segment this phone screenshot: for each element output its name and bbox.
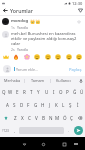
button[interactable]: Merhaba <box>0 76 24 85</box>
button[interactable]: I <box>50 85 57 98</box>
staticText: Ö <box>63 115 67 121</box>
staticText: Ü <box>80 89 84 95</box>
button[interactable]: İ <box>74 98 81 111</box>
staticText: D <box>20 102 24 108</box>
button[interactable]: P <box>64 85 71 98</box>
staticText: 1s <box>11 25 15 29</box>
button[interactable]: Flower <box>23 53 31 61</box>
button[interactable]: F <box>25 98 32 111</box>
staticText: A <box>6 102 9 108</box>
button[interactable]: Emoji <box>65 53 73 61</box>
button[interactable]: M <box>54 111 61 124</box>
staticText: Yanıtla <box>17 47 28 52</box>
staticText: R <box>23 89 26 95</box>
staticText: Yorumlar <box>10 7 33 14</box>
button[interactable]: A <box>4 98 11 111</box>
staticText: W <box>8 89 13 95</box>
staticText: 12:30 <box>72 1 83 6</box>
button[interactable]: Ü <box>78 85 85 98</box>
staticText: H <box>41 102 45 108</box>
button[interactable]: Emoji <box>54 53 62 61</box>
button[interactable]: Like <box>75 18 83 26</box>
button[interactable]: Ç <box>68 111 75 124</box>
button[interactable]: W <box>7 85 14 98</box>
button[interactable]: Voice input <box>76 76 85 85</box>
button[interactable]: O <box>57 85 64 98</box>
button[interactable]: Emoji <box>33 53 41 61</box>
button[interactable]: D <box>18 98 25 111</box>
button[interactable]: Back <box>20 140 28 148</box>
button[interactable]: X <box>19 111 26 124</box>
button[interactable]: Send <box>74 126 83 135</box>
staticText: . <box>68 128 70 134</box>
button[interactable]: B <box>40 111 47 124</box>
button[interactable]: Kullanıcı <box>51 76 76 85</box>
button[interactable]: Backspace <box>75 111 85 124</box>
staticText: Yorum ekle... <box>16 67 38 72</box>
staticText: F <box>27 102 30 108</box>
button[interactable]: C <box>26 111 33 124</box>
button[interactable]: S <box>11 98 18 111</box>
button[interactable]: Home <box>39 140 47 148</box>
staticText: İ <box>77 102 79 108</box>
button[interactable]: Q <box>0 85 7 98</box>
staticText: , <box>14 128 16 134</box>
button[interactable]: V <box>33 111 40 124</box>
staticText: mondog <box>11 18 29 24</box>
button[interactable]: J <box>46 98 53 111</box>
button[interactable]: T <box>28 85 35 98</box>
staticText: L <box>62 102 65 108</box>
staticText: 👑👑 <box>30 19 41 24</box>
button[interactable]: Crown <box>2 53 10 61</box>
button[interactable]: Ğ <box>71 85 78 98</box>
button[interactable]: H <box>39 98 46 111</box>
button[interactable]: E <box>14 85 21 98</box>
staticText: V <box>35 115 38 121</box>
button[interactable]: Fire <box>12 53 20 61</box>
button[interactable]: Ö <box>61 111 68 124</box>
button[interactable]: Y <box>35 85 42 98</box>
button[interactable]: Shift <box>0 111 11 124</box>
button[interactable]: Emoji <box>44 53 52 61</box>
button[interactable]: K <box>53 98 60 111</box>
staticText: Y <box>37 89 40 95</box>
staticText: B <box>42 115 45 121</box>
staticText: K <box>55 102 58 108</box>
staticText: I <box>53 89 55 95</box>
button[interactable]: Tamam <box>25 76 50 85</box>
staticText: O <box>59 89 63 95</box>
button[interactable]: Z <box>11 111 19 124</box>
button[interactable]: G <box>32 98 39 111</box>
staticText: N <box>49 115 53 121</box>
button[interactable]: Ş <box>67 98 74 111</box>
staticText: M <box>55 115 60 121</box>
button[interactable]: Yorum ekle... <box>16 62 67 76</box>
button[interactable]: R <box>21 85 28 98</box>
staticText: meh.bel Bunushesi en kazandiras etkilir … <box>11 31 84 46</box>
staticText: Ş <box>69 102 72 108</box>
staticText: J <box>49 102 51 108</box>
button[interactable]: L <box>60 98 67 111</box>
staticText: T <box>30 89 33 95</box>
staticText: E <box>16 89 19 95</box>
button[interactable]: Sort <box>75 6 85 15</box>
staticText: Ğ <box>73 89 77 95</box>
staticText: ?123 <box>2 129 9 133</box>
button[interactable]: ?123 <box>0 124 11 137</box>
button[interactable]: , <box>11 124 18 137</box>
staticText: X <box>21 115 24 121</box>
button[interactable]: Emoji <box>75 53 83 61</box>
staticText: Merhaba <box>4 78 21 83</box>
button[interactable]: Back <box>0 6 10 15</box>
button[interactable]: Paylaş <box>69 67 82 72</box>
staticText: S <box>13 102 16 108</box>
button[interactable]: Hide keyboard <box>72 140 80 148</box>
staticText: Yanıtla <box>17 25 28 29</box>
button[interactable]: N <box>47 111 54 124</box>
button[interactable]: U <box>43 85 50 98</box>
button[interactable]: Recents <box>60 140 68 148</box>
staticText: U <box>45 89 49 95</box>
staticText: G <box>34 102 38 108</box>
